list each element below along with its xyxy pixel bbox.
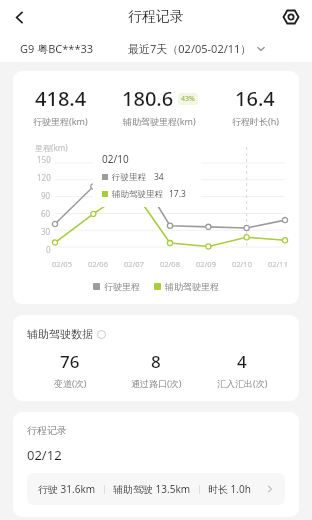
staticText: 02/11 bbox=[268, 259, 288, 269]
staticText: 02/12 bbox=[27, 446, 62, 464]
staticText: 辅助驾驶里程 bbox=[112, 189, 163, 200]
staticText: 通过路口(次) bbox=[131, 377, 182, 389]
staticText: 辅助驾驶数据 bbox=[27, 327, 93, 341]
staticText: 行驶里程 bbox=[104, 281, 140, 292]
staticText: G9 粤BC***33 bbox=[20, 41, 94, 56]
staticText: 17.3 bbox=[169, 188, 186, 200]
staticText: 30 bbox=[41, 226, 51, 237]
staticText: 行程时长(h) bbox=[232, 115, 279, 127]
staticText: 辅助驾驶里程 bbox=[165, 281, 219, 292]
staticText: 行驶里程(km) bbox=[33, 115, 88, 127]
staticText: 行程记录 bbox=[27, 424, 67, 437]
staticText: 02/05 bbox=[52, 259, 72, 269]
staticText: 34 bbox=[154, 171, 164, 183]
staticText: 时长 1.0h bbox=[208, 482, 251, 496]
staticText: 02/07 bbox=[124, 259, 144, 269]
staticText: 行程记录 bbox=[128, 8, 184, 26]
staticText: 0 bbox=[46, 244, 51, 255]
staticText: 43% bbox=[181, 94, 195, 104]
staticText: 辅助驾驶里程(km) bbox=[123, 115, 196, 127]
staticText: 辅助驾驶 13.5km bbox=[113, 482, 191, 496]
staticText: 76 bbox=[60, 350, 80, 373]
staticText: 60 bbox=[41, 208, 51, 219]
staticText: 最近7天（02/05-02/11） bbox=[128, 41, 252, 56]
staticText: 汇入汇出(次) bbox=[217, 377, 268, 389]
staticText: 行驶里程 bbox=[112, 172, 146, 183]
button[interactable]: 最近7天（02/05-02/11） bbox=[128, 41, 265, 56]
staticText: 02/06 bbox=[88, 259, 108, 269]
button[interactable]: Settings bbox=[277, 3, 305, 31]
staticText: 4 bbox=[237, 350, 247, 373]
button[interactable]: G9 粤BC***33 bbox=[20, 41, 94, 56]
staticText: 行驶 31.6km bbox=[38, 482, 96, 496]
button[interactable]: Info bbox=[96, 329, 106, 339]
staticText: 里程(km) bbox=[35, 142, 68, 153]
staticText: 02/10 bbox=[102, 152, 129, 166]
button[interactable]: Back bbox=[4, 2, 34, 32]
button[interactable]: 行驶 31.6km bbox=[27, 473, 285, 505]
staticText: 180.6 bbox=[122, 85, 174, 112]
staticText: 02/08 bbox=[160, 259, 180, 269]
staticText: 02/10 bbox=[232, 259, 252, 269]
staticText: 90 bbox=[41, 190, 51, 201]
staticText: 150 bbox=[37, 154, 51, 165]
staticText: 418.4 bbox=[35, 85, 87, 112]
staticText: 02/09 bbox=[196, 259, 216, 269]
staticText: 8 bbox=[151, 350, 161, 373]
staticText: 16.4 bbox=[235, 85, 275, 112]
staticText: 120 bbox=[37, 172, 51, 183]
staticText: 变道(次) bbox=[54, 377, 87, 389]
